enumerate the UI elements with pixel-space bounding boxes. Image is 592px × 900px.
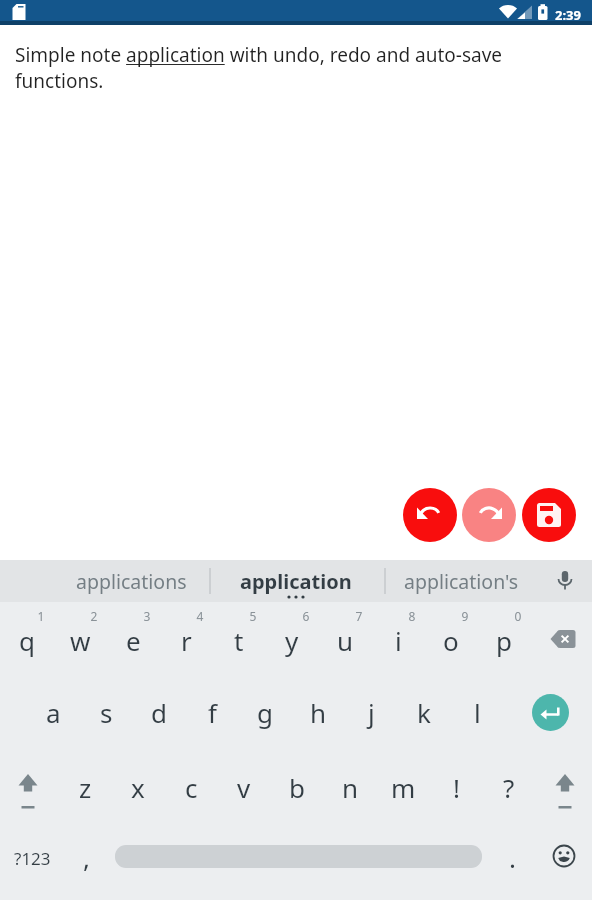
staticText: d bbox=[151, 695, 167, 730]
button[interactable] bbox=[539, 753, 591, 821]
button[interactable]: k bbox=[398, 678, 450, 746]
staticText: application's bbox=[404, 568, 519, 595]
button[interactable]: j bbox=[345, 678, 397, 746]
staticText: y bbox=[285, 623, 299, 658]
staticText: 6 bbox=[266, 608, 346, 624]
staticText: application bbox=[240, 568, 352, 595]
staticText: k bbox=[417, 695, 431, 730]
button[interactable] bbox=[537, 605, 589, 673]
staticText: b bbox=[289, 770, 305, 805]
button[interactable]: ? bbox=[483, 753, 535, 821]
staticText: i bbox=[395, 623, 402, 658]
button[interactable]: y bbox=[266, 606, 318, 674]
button[interactable]: n bbox=[324, 753, 376, 821]
button[interactable]: l bbox=[451, 678, 503, 746]
staticText: h bbox=[310, 695, 327, 730]
staticText: . bbox=[509, 840, 516, 875]
button[interactable] bbox=[524, 678, 576, 746]
staticText: 3 bbox=[107, 608, 187, 624]
button[interactable] bbox=[2, 753, 54, 821]
button[interactable]: e bbox=[107, 606, 159, 674]
staticText: ? bbox=[503, 770, 515, 805]
staticText: g bbox=[257, 695, 273, 730]
button[interactable] bbox=[115, 845, 482, 868]
staticText: m bbox=[391, 770, 416, 805]
staticText: t bbox=[234, 623, 244, 658]
staticText: l bbox=[474, 695, 481, 730]
button[interactable]: t bbox=[213, 606, 265, 674]
staticText: r bbox=[181, 623, 192, 658]
staticText: n bbox=[342, 770, 359, 805]
staticText: Simple note application with undo, redo … bbox=[15, 42, 560, 93]
button[interactable]: r bbox=[160, 606, 212, 674]
staticText: e bbox=[126, 623, 141, 658]
button[interactable]: z bbox=[59, 753, 111, 821]
button[interactable]: m bbox=[377, 753, 429, 821]
button[interactable]: v bbox=[218, 753, 270, 821]
button[interactable]: f bbox=[186, 678, 238, 746]
staticText: p bbox=[496, 623, 512, 658]
button[interactable]: p bbox=[478, 606, 530, 674]
staticText: o bbox=[443, 623, 459, 658]
button[interactable] bbox=[403, 488, 457, 542]
staticText: u bbox=[337, 623, 354, 658]
button[interactable]: h bbox=[292, 678, 344, 746]
staticText: j bbox=[368, 695, 375, 730]
button[interactable]: s bbox=[80, 678, 132, 746]
staticText: f bbox=[208, 695, 217, 730]
button[interactable]: d bbox=[133, 678, 185, 746]
staticText: , bbox=[83, 840, 90, 875]
staticText: 4 bbox=[160, 608, 240, 624]
staticText: a bbox=[46, 695, 61, 730]
staticText: 1 bbox=[1, 608, 81, 624]
staticText: 2 bbox=[54, 608, 134, 624]
button[interactable]: o bbox=[425, 606, 477, 674]
staticText: 9 bbox=[425, 608, 505, 624]
button[interactable]: application bbox=[236, 560, 356, 602]
button[interactable]: application's bbox=[400, 560, 522, 602]
staticText: s bbox=[100, 695, 113, 730]
staticText: v bbox=[237, 770, 251, 805]
button[interactable]: w bbox=[54, 606, 106, 674]
staticText: applications bbox=[76, 568, 187, 595]
staticText: ?123 bbox=[14, 847, 51, 870]
button[interactable]: b bbox=[271, 753, 323, 821]
staticText: x bbox=[131, 770, 145, 805]
button[interactable] bbox=[545, 560, 585, 602]
button[interactable]: applications bbox=[74, 560, 188, 602]
staticText: w bbox=[70, 623, 91, 658]
button[interactable]: ! bbox=[430, 753, 482, 821]
button[interactable]: i bbox=[372, 606, 424, 674]
staticText: 0 bbox=[478, 608, 558, 624]
button[interactable] bbox=[522, 488, 576, 542]
staticText: 2:39 bbox=[555, 6, 581, 24]
staticText: 8 bbox=[372, 608, 452, 624]
button[interactable]: g bbox=[239, 678, 291, 746]
staticText: ! bbox=[453, 770, 460, 805]
button[interactable]: ?123 bbox=[5, 828, 60, 888]
staticText: z bbox=[79, 770, 92, 805]
button[interactable]: . bbox=[486, 823, 538, 891]
button[interactable]: c bbox=[165, 753, 217, 821]
staticText: c bbox=[185, 770, 198, 805]
button[interactable]: x bbox=[112, 753, 164, 821]
button[interactable]: q bbox=[1, 606, 53, 674]
button[interactable] bbox=[462, 488, 516, 542]
button[interactable]: , bbox=[60, 823, 112, 891]
button[interactable]: u bbox=[319, 606, 371, 674]
staticText: 7 bbox=[319, 608, 399, 624]
button[interactable] bbox=[538, 826, 590, 886]
button[interactable]: a bbox=[27, 678, 79, 746]
staticText: 5 bbox=[213, 608, 293, 624]
staticText: q bbox=[19, 623, 35, 658]
